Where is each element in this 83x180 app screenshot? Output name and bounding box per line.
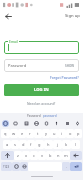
staticText: k <box>65 142 68 147</box>
staticText: n <box>57 153 60 158</box>
staticText: x <box>25 153 28 158</box>
button[interactable]: i <box>58 129 66 138</box>
button[interactable]: g <box>35 140 44 149</box>
button[interactable]: s <box>11 140 19 149</box>
button[interactable]: Shift <box>1 151 14 160</box>
button[interactable]: v <box>38 151 46 160</box>
button[interactable]: . <box>62 162 70 171</box>
button[interactable]: e <box>18 129 26 138</box>
button[interactable]: m <box>62 151 70 160</box>
button[interactable]: Translate <box>33 120 40 127</box>
button[interactable]: o <box>66 129 74 138</box>
button[interactable]: y <box>42 129 50 138</box>
button[interactable]: d <box>19 140 27 149</box>
staticText: j <box>57 142 59 147</box>
button[interactable]: c <box>30 151 38 160</box>
staticText: ?123 <box>3 165 10 169</box>
button[interactable]: Voice input <box>53 120 60 127</box>
staticText: q <box>4 131 7 136</box>
staticText: Email <box>9 39 18 44</box>
staticText: c <box>33 153 35 158</box>
button[interactable]: SHOW <box>65 64 75 68</box>
staticText: o <box>69 131 72 136</box>
staticText: r <box>29 131 31 136</box>
staticText: z <box>17 153 19 158</box>
button[interactable]: f <box>27 140 35 149</box>
staticText: Password <box>8 63 27 68</box>
button[interactable]: x <box>22 151 30 160</box>
staticText: i <box>61 131 63 136</box>
staticText: p <box>77 131 80 136</box>
button[interactable]: Forgot Password? <box>50 75 79 80</box>
staticText: a <box>6 142 9 147</box>
staticText: Sign up <box>65 13 80 19</box>
button[interactable]: w <box>10 129 18 138</box>
button[interactable]: t <box>34 129 42 138</box>
button[interactable]: n <box>54 151 62 160</box>
staticText: s <box>14 142 16 147</box>
button[interactable]: u <box>50 129 58 138</box>
staticText: . <box>66 164 67 169</box>
button[interactable]: b <box>46 151 54 160</box>
button[interactable]: Enter <box>70 162 82 171</box>
staticText: d <box>22 142 25 147</box>
staticText: w <box>12 131 16 136</box>
staticText: y <box>45 131 48 136</box>
button[interactable]: Change language <box>20 162 28 171</box>
button[interactable]: ?123 <box>1 162 12 171</box>
button[interactable]: Backspace <box>70 151 82 160</box>
button[interactable]: l <box>71 140 80 149</box>
button[interactable]: Sign up <box>65 13 80 19</box>
button[interactable]: Need an account? <box>27 101 56 106</box>
button[interactable]: Clipboard <box>43 120 50 127</box>
button[interactable]: GIF <box>12 120 19 127</box>
staticText: Need an account? <box>27 101 56 106</box>
staticText: u <box>53 131 56 136</box>
button[interactable]: LOG IN <box>4 84 79 96</box>
staticText: Password <box>27 114 41 118</box>
button[interactable]: Sticker <box>23 120 30 127</box>
staticText: password <box>43 114 57 118</box>
button[interactable]: Back <box>2 10 14 22</box>
button[interactable]: Password <box>4 59 79 72</box>
button[interactable]: Settings <box>74 120 81 127</box>
button[interactable]: a <box>3 140 11 149</box>
staticText: e <box>21 131 24 136</box>
button[interactable]: k <box>62 140 71 149</box>
button[interactable]: q <box>1 129 10 138</box>
staticText: g <box>38 142 41 147</box>
button[interactable] <box>4 41 79 54</box>
button[interactable]: z <box>14 151 22 160</box>
button[interactable]: Emoji <box>12 162 20 171</box>
button[interactable]: h <box>44 140 53 149</box>
staticText: b <box>49 153 52 158</box>
staticText: t <box>37 131 39 136</box>
button[interactable]: r <box>26 129 34 138</box>
staticText: f <box>30 142 32 147</box>
staticText: h <box>47 142 50 147</box>
staticText: l <box>75 142 77 147</box>
button[interactable]: Emoji <box>2 120 9 127</box>
button[interactable]: j <box>53 140 62 149</box>
staticText: LOG IN <box>34 87 49 93</box>
button[interactable]: More options <box>64 120 71 127</box>
staticText: SHOW <box>65 64 75 68</box>
staticText: Forgot Password? <box>50 75 79 80</box>
button[interactable]: p <box>74 129 82 138</box>
staticText: m <box>64 153 68 158</box>
staticText: v <box>41 153 44 158</box>
